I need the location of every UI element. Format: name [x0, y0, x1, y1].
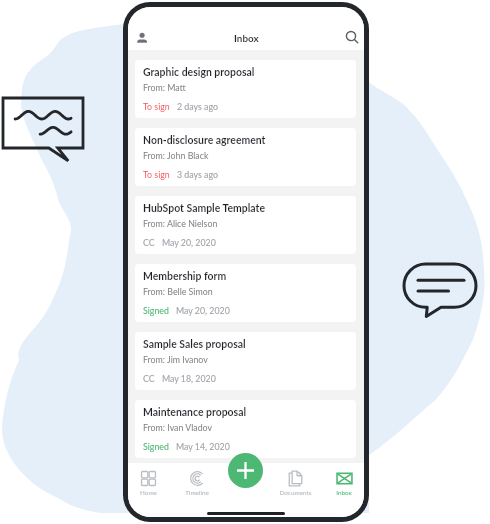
staticText: Sample Sales proposal [143, 338, 246, 351]
staticText: May 18, 2020 [162, 373, 216, 384]
staticText: Membership form [143, 270, 227, 283]
button[interactable]: Non-disclosure agreement [135, 128, 356, 186]
staticText: CC [143, 237, 155, 248]
button[interactable]: Search [346, 31, 364, 51]
staticText: To sign [143, 169, 170, 180]
button[interactable]: Home [128, 471, 171, 497]
staticText: Signed [143, 441, 169, 452]
button[interactable]: Create document [228, 453, 263, 488]
staticText: 2 days ago [177, 101, 218, 112]
staticText: To sign [143, 101, 170, 112]
staticText: May 14, 2020 [176, 441, 230, 452]
button[interactable]: Inbox [321, 471, 364, 497]
staticText: From: John Black [143, 150, 209, 161]
staticText: Inbox [336, 489, 352, 497]
staticText: 3 days ago [177, 169, 218, 180]
staticText: Non-disclosure agreement [143, 134, 266, 147]
staticText: Graphic design proposal [143, 66, 255, 79]
button[interactable]: Documents [272, 471, 318, 497]
staticText: CC [143, 373, 155, 384]
staticText: From: Matt [143, 82, 186, 93]
button[interactable]: Membership form [135, 264, 356, 322]
staticText: Home [140, 489, 157, 497]
staticText: Inbox [234, 32, 259, 44]
staticText: From: Ivan Vladov [143, 422, 213, 433]
staticText: Signed [143, 305, 169, 316]
staticText: From: Alice Nielson [143, 218, 218, 229]
staticText: May 20, 2020 [162, 237, 216, 248]
staticText: From: Jim Ivanov [143, 354, 208, 365]
button[interactable]: Sample Sales proposal [135, 332, 356, 390]
staticText: Timeline [185, 489, 209, 497]
button[interactable]: Timeline [174, 471, 220, 497]
staticText: May 20, 2020 [176, 305, 230, 316]
button[interactable]: Maintenance proposal [135, 400, 356, 458]
button[interactable]: HubSpot Sample Template [135, 196, 356, 254]
button[interactable]: Profile [133, 28, 153, 48]
button[interactable]: Graphic design proposal [135, 60, 356, 118]
staticText: Documents [279, 489, 312, 497]
staticText: Maintenance proposal [143, 406, 247, 419]
staticText: From: Belle Simon [143, 286, 213, 297]
staticText: HubSpot Sample Template [143, 202, 265, 215]
